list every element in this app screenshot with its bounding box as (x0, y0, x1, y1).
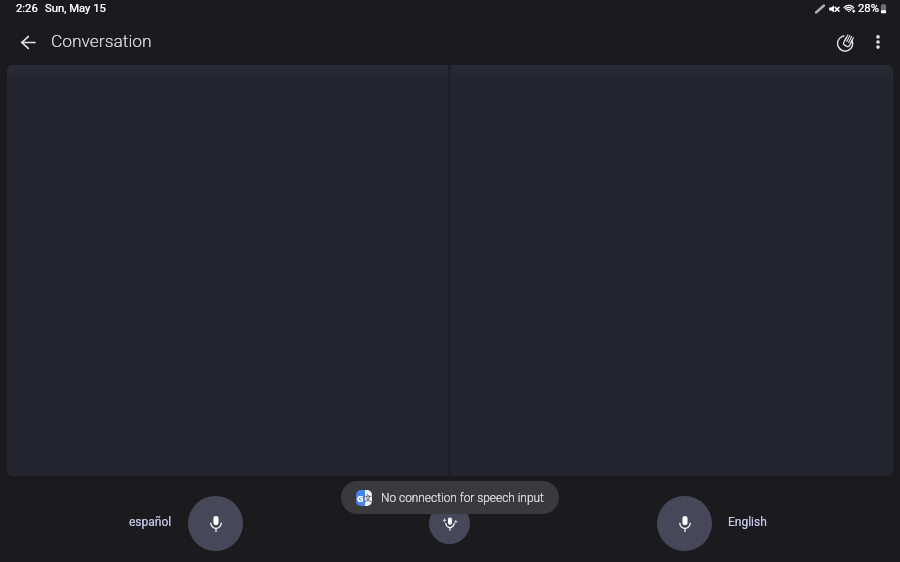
staticText: English (728, 515, 767, 529)
button[interactable]: G (341, 481, 559, 514)
button[interactable]: More options (859, 23, 897, 61)
button[interactable]: Auto detect language (429, 503, 470, 544)
button[interactable]: español (118, 503, 182, 541)
button[interactable]: Speak English (657, 496, 712, 551)
staticText: G (357, 492, 364, 504)
button[interactable]: Speak Spanish (188, 496, 243, 551)
button[interactable]: Gesture tutorial (827, 23, 865, 61)
staticText: español (129, 515, 172, 529)
staticText: Sun, May 15 (45, 2, 106, 15)
staticText: 28% (858, 2, 879, 15)
staticText: No connection for speech input (381, 491, 544, 505)
staticText: 2:26 (16, 2, 38, 15)
button[interactable]: Back (9, 24, 46, 61)
staticText: 文 (364, 493, 372, 503)
staticText: Conversation (51, 31, 152, 51)
button[interactable]: English (718, 503, 777, 541)
